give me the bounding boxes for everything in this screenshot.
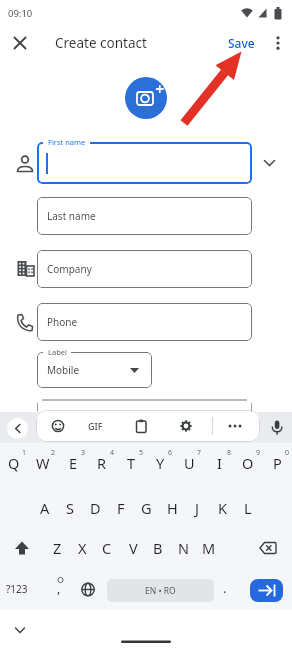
staticText: Z: [53, 538, 62, 558]
staticText: EN • RO: [145, 585, 176, 597]
staticText: H: [167, 498, 178, 518]
button[interactable]: F: [109, 493, 133, 523]
staticText: 1: [22, 448, 27, 458]
staticText: Create contact: [55, 34, 147, 52]
staticText: W: [36, 453, 50, 473]
button[interactable]: [125, 77, 167, 119]
staticText: C: [102, 538, 112, 558]
button[interactable]: Y: [146, 448, 174, 478]
button[interactable]: [7, 418, 28, 439]
staticText: Q: [8, 453, 20, 473]
button[interactable]: Phone: [37, 303, 252, 341]
staticText: X: [78, 538, 87, 558]
button[interactable]: Q: [0, 448, 28, 478]
button[interactable]: N: [172, 533, 196, 563]
button[interactable]: J: [185, 493, 209, 523]
button[interactable]: D: [83, 493, 107, 523]
button[interactable]: GIF: [65, 414, 125, 438]
staticText: E: [69, 453, 78, 473]
staticText: F: [117, 498, 125, 518]
staticText: B: [153, 538, 163, 558]
staticText: 5: [139, 448, 144, 458]
button[interactable]: [223, 414, 247, 438]
staticText: Save: [228, 35, 255, 51]
button[interactable]: S: [58, 493, 82, 523]
button[interactable]: B: [146, 533, 170, 563]
staticText: ?123: [6, 582, 28, 596]
staticText: 0: [285, 448, 290, 458]
button[interactable]: [129, 414, 153, 438]
button[interactable]: [174, 414, 198, 438]
staticText: G: [141, 498, 152, 518]
button[interactable]: K: [210, 493, 234, 523]
staticText: J: [195, 498, 199, 518]
staticText: I: [217, 453, 222, 473]
button[interactable]: .: [195, 576, 255, 600]
staticText: D: [90, 498, 101, 518]
button[interactable]: U: [175, 448, 203, 478]
staticText: S: [66, 498, 74, 518]
button[interactable]: ,: [29, 576, 89, 600]
button[interactable]: [37, 142, 252, 184]
staticText: Last name: [47, 209, 96, 223]
button[interactable]: [77, 579, 99, 602]
staticText: 2: [51, 448, 56, 458]
staticText: N: [178, 538, 190, 558]
staticText: GIF: [88, 420, 103, 432]
button[interactable]: V: [121, 533, 145, 563]
button[interactable]: [46, 414, 70, 438]
staticText: Mobile: [47, 363, 80, 377]
button[interactable]: P: [263, 448, 291, 478]
staticText: 6: [168, 448, 173, 458]
button[interactable]: O: [234, 448, 262, 478]
staticText: Label: [48, 347, 67, 357]
button[interactable]: [250, 579, 283, 602]
staticText: A: [40, 498, 50, 518]
button[interactable]: C: [95, 533, 119, 563]
staticText: Company: [47, 262, 92, 276]
button[interactable]: A: [33, 493, 57, 523]
button[interactable]: [265, 414, 289, 438]
button[interactable]: [10, 536, 36, 560]
staticText: 7: [197, 448, 202, 458]
button[interactable]: H: [160, 493, 184, 523]
button[interactable]: Z: [45, 533, 69, 563]
staticText: 4: [110, 448, 115, 458]
button[interactable]: ?123: [0, 577, 47, 601]
button[interactable]: E: [59, 448, 87, 478]
button[interactable]: R: [88, 448, 116, 478]
staticText: ,: [57, 579, 61, 597]
button[interactable]: T: [117, 448, 145, 478]
staticText: First name: [48, 137, 86, 147]
button[interactable]: [266, 31, 290, 55]
button[interactable]: [255, 536, 281, 560]
staticText: R: [97, 453, 107, 473]
button[interactable]: Last name: [37, 197, 252, 235]
staticText: L: [244, 498, 252, 518]
staticText: 9: [256, 448, 261, 458]
button[interactable]: [258, 152, 282, 176]
button[interactable]: [8, 620, 32, 640]
staticText: Y: [156, 453, 165, 473]
button[interactable]: I: [205, 448, 233, 478]
staticText: T: [127, 453, 136, 473]
button[interactable]: Mobile: [37, 352, 152, 388]
staticText: K: [218, 498, 227, 518]
button[interactable]: EN • RO: [107, 579, 214, 602]
staticText: 8: [227, 448, 232, 458]
staticText: .: [223, 579, 227, 597]
staticText: O: [242, 453, 254, 473]
button[interactable]: G: [134, 493, 158, 523]
button[interactable]: X: [70, 533, 94, 563]
staticText: P: [273, 453, 282, 473]
button[interactable]: W: [29, 448, 57, 478]
button[interactable]: [8, 31, 32, 55]
button[interactable]: L: [236, 493, 260, 523]
staticText: U: [184, 453, 195, 473]
button[interactable]: Company: [37, 250, 252, 288]
staticText: Phone: [47, 315, 78, 329]
button[interactable]: M: [197, 533, 221, 563]
staticText: M: [202, 538, 216, 558]
staticText: 09:10: [8, 7, 33, 20]
button[interactable]: Save: [224, 32, 258, 54]
